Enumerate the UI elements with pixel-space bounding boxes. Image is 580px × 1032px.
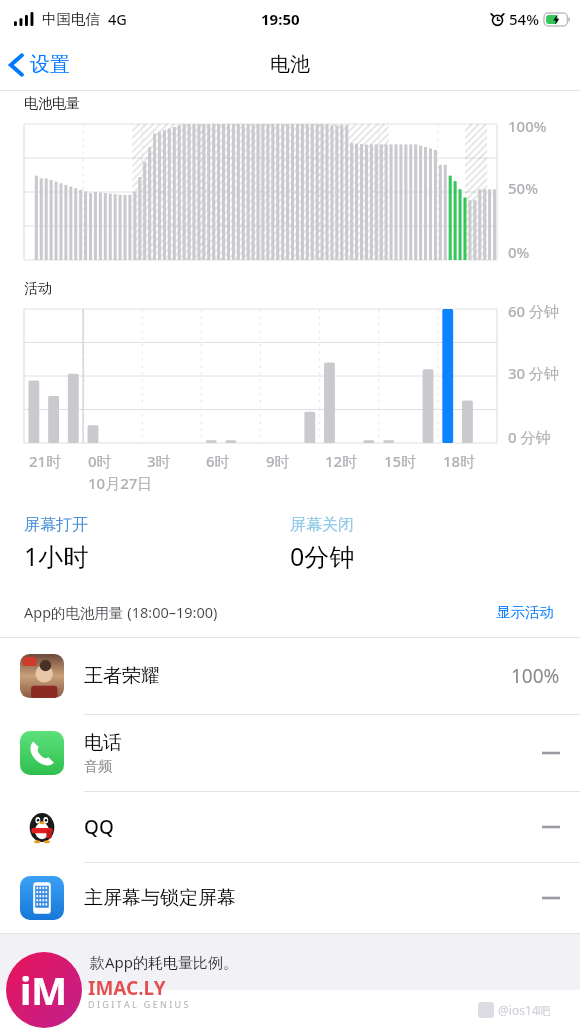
- staticText: 9时: [266, 451, 290, 471]
- staticText: 19:50: [261, 9, 300, 29]
- staticText: iM: [20, 964, 68, 1016]
- staticText: 100%: [508, 116, 547, 136]
- staticText: 1小时: [24, 539, 89, 573]
- staticText: 音频: [84, 758, 112, 776]
- staticText: 3时: [147, 451, 171, 471]
- staticText: App的电池用量 (18:00–19:00): [24, 602, 218, 622]
- staticText: 电池: [270, 52, 310, 77]
- staticText: 18时: [443, 451, 476, 471]
- button[interactable]: 主屏幕与锁定屏幕: [0, 863, 580, 933]
- button[interactable]: 电话: [0, 715, 580, 791]
- staticText: 6时: [206, 451, 230, 471]
- button[interactable]: QQ: [0, 792, 580, 862]
- staticText: IMAC.LY: [88, 975, 166, 1001]
- staticText: 电话: [84, 731, 122, 755]
- staticText: 0分钟: [290, 539, 355, 573]
- staticText: 10月27日: [88, 473, 153, 493]
- staticText: 21时: [29, 451, 62, 471]
- staticText: 12时: [325, 451, 358, 471]
- staticText: 50%: [508, 178, 538, 198]
- staticText: 4G: [108, 9, 127, 29]
- staticText: 100%: [511, 663, 560, 689]
- button[interactable]: 王者荣耀: [0, 638, 580, 714]
- staticText: 0时: [88, 451, 112, 471]
- staticText: @ios14吧: [498, 1002, 551, 1018]
- staticText: 屏幕关闭: [290, 515, 354, 535]
- staticText: 屏幕打开: [24, 515, 88, 535]
- staticText: 54%: [509, 9, 539, 29]
- staticText: 王者荣耀: [84, 664, 160, 688]
- staticText: 0 分钟: [508, 427, 551, 447]
- staticText: 中国电信: [42, 10, 100, 28]
- staticText: 60 分钟: [508, 301, 560, 321]
- staticText: 0%: [508, 242, 530, 262]
- staticText: 15时: [384, 451, 417, 471]
- staticText: D I G I T A L G E N I U S: [88, 998, 189, 1010]
- staticText: 设置: [30, 52, 70, 77]
- staticText: 主屏幕与锁定屏幕: [84, 886, 236, 910]
- staticText: 30 分钟: [508, 363, 560, 383]
- button[interactable]: 显示活动: [492, 599, 558, 625]
- staticText: QQ: [84, 814, 114, 840]
- staticText: 电池电量: [24, 95, 80, 113]
- staticText: 活动: [24, 280, 52, 298]
- staticText: 显示活动: [496, 603, 554, 621]
- staticText: 款App的耗电量比例。: [90, 952, 239, 972]
- button[interactable]: 设置: [0, 46, 80, 83]
